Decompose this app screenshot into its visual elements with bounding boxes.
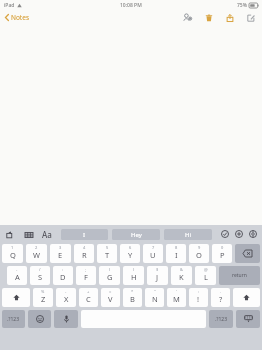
staticText: M <box>173 294 180 304</box>
staticText: Notes <box>11 13 29 22</box>
staticText: 3 <box>59 245 62 250</box>
button[interactable]: : <box>53 266 73 285</box>
staticText: C <box>86 294 91 304</box>
button[interactable]: 0 <box>212 244 232 263</box>
button[interactable]: .?123 <box>209 310 233 328</box>
button[interactable]: Delete <box>203 12 214 23</box>
button[interactable]: 4 <box>74 244 94 263</box>
staticText: & <box>180 267 183 272</box>
button[interactable]: I <box>61 229 108 240</box>
staticText: O <box>196 250 202 260</box>
staticText: * <box>131 289 134 294</box>
button[interactable]: % <box>33 288 53 307</box>
staticText: J <box>156 272 159 282</box>
button[interactable]: Hey <box>112 229 160 240</box>
button[interactable]: 5 <box>97 244 117 263</box>
button[interactable]: 9 <box>189 244 209 263</box>
button[interactable]: - <box>56 288 76 307</box>
staticText: Hey <box>131 231 142 239</box>
staticText: L <box>204 272 208 282</box>
button[interactable]: Dictate <box>54 310 78 328</box>
button[interactable]: " <box>145 288 164 307</box>
button[interactable]: + <box>79 288 98 307</box>
staticText: % <box>41 289 45 294</box>
button[interactable]: : <box>189 288 208 307</box>
button[interactable]: Settings <box>248 229 258 239</box>
staticText: return <box>232 272 247 279</box>
staticText: @ <box>204 267 208 272</box>
staticText: 4 <box>83 245 86 250</box>
button[interactable]: Emoji <box>28 310 51 328</box>
staticText: 10:08 PM <box>120 2 142 9</box>
button[interactable]: Compose <box>245 12 256 23</box>
staticText: ; <box>85 267 87 272</box>
staticText: G <box>107 272 113 282</box>
staticText: - <box>16 267 18 272</box>
staticText: T <box>105 250 110 260</box>
staticText: .?123 <box>215 316 228 323</box>
staticText: N <box>152 294 158 304</box>
button[interactable]: Undo <box>4 229 15 240</box>
staticText: 75% <box>237 2 247 9</box>
button[interactable]: ; <box>76 266 96 285</box>
button[interactable]: ( <box>99 266 120 285</box>
staticText: F <box>84 272 88 282</box>
button[interactable]: return <box>219 266 260 285</box>
staticText: $ <box>156 267 159 272</box>
button[interactable]: ' <box>167 288 186 307</box>
button[interactable]: Shift <box>233 288 260 307</box>
button[interactable]: Hide keyboard <box>236 310 260 328</box>
button[interactable]: Notes <box>0 11 34 24</box>
staticText: A <box>15 272 20 282</box>
button[interactable]: @ <box>195 266 216 285</box>
button[interactable]: 8 <box>166 244 186 263</box>
button[interactable]: .?123 <box>2 310 25 328</box>
staticText: 1 <box>11 245 14 250</box>
staticText: 7 <box>152 245 155 250</box>
button[interactable]: Add <box>234 229 244 239</box>
button[interactable]: = <box>101 288 120 307</box>
staticText: 8 <box>175 245 178 250</box>
button[interactable]: Backspace <box>235 244 260 263</box>
button[interactable]: - <box>7 266 27 285</box>
staticText: I <box>83 231 86 239</box>
button[interactable]: $ <box>147 266 168 285</box>
staticText: I <box>175 250 178 260</box>
staticText: ( <box>109 267 111 272</box>
button[interactable]: Hi <box>164 229 212 240</box>
staticText: P <box>220 250 225 260</box>
staticText: ? <box>219 294 223 304</box>
button[interactable]: Aa <box>41 228 53 241</box>
button[interactable]: . <box>211 288 230 307</box>
button[interactable]: 3 <box>50 244 71 263</box>
button[interactable]: Add people <box>182 12 193 23</box>
button[interactable]: Check <box>220 229 230 239</box>
staticText: : <box>198 289 200 294</box>
staticText: S <box>38 272 43 282</box>
staticText: + <box>87 289 90 294</box>
button[interactable]: 6 <box>120 244 140 263</box>
staticText: Hi <box>185 231 191 239</box>
staticText: B <box>130 294 135 304</box>
staticText: R <box>82 250 87 260</box>
button[interactable]: ) <box>123 266 144 285</box>
staticText: ! <box>197 294 200 304</box>
button[interactable]: 1 <box>2 244 23 263</box>
button[interactable]: 7 <box>143 244 163 263</box>
staticText: U <box>150 250 156 260</box>
button[interactable]: & <box>171 266 192 285</box>
staticText: D <box>60 272 66 282</box>
staticText: iPad <box>4 2 15 9</box>
button[interactable]: Shift <box>2 288 30 307</box>
staticText: Q <box>10 250 16 260</box>
staticText: : <box>62 267 64 272</box>
button[interactable]: / <box>30 266 50 285</box>
button[interactable]: 2 <box>26 244 47 263</box>
button[interactable]: Share <box>224 12 235 23</box>
staticText: 9 <box>198 245 201 250</box>
button[interactable]: Format table <box>23 229 34 240</box>
button[interactable]: * <box>123 288 142 307</box>
staticText: - <box>65 289 67 294</box>
staticText: ' <box>176 289 177 294</box>
